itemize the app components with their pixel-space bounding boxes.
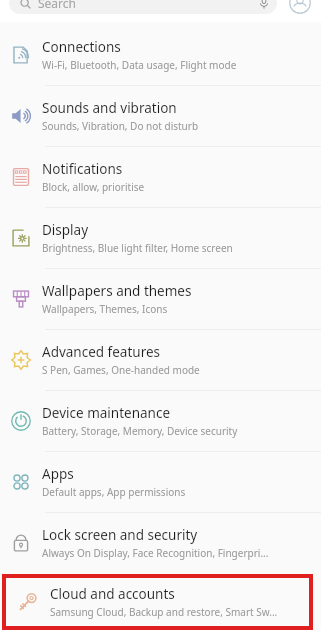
staticText: Sounds and vibration bbox=[42, 99, 177, 117]
staticText: Device maintenance bbox=[42, 404, 171, 422]
button[interactable]: Cloud and accounts bbox=[6, 578, 309, 626]
staticText: Sounds, Vibration, Do not disturb bbox=[42, 119, 199, 133]
staticText: Wi-Fi, Bluetooth, Data usage, Flight mod… bbox=[42, 58, 237, 72]
button[interactable]: Connections bbox=[0, 25, 321, 85]
button[interactable]: Advanced features bbox=[0, 330, 321, 390]
staticText: Block, allow, prioritise bbox=[42, 180, 145, 194]
staticText: Display bbox=[42, 221, 89, 239]
staticText: Battery, Storage, Memory, Device securit… bbox=[42, 424, 238, 438]
button[interactable]: Wallpapers and themes bbox=[0, 269, 321, 329]
staticText: Notifications bbox=[42, 160, 123, 178]
button[interactable]: Lock screen and security bbox=[0, 513, 321, 573]
staticText: Cloud and accounts bbox=[50, 585, 175, 603]
staticText: Wallpapers, Themes, Icons bbox=[42, 302, 168, 316]
staticText: Apps bbox=[42, 465, 74, 483]
staticText: Always On Display, Face Recognition, Fin… bbox=[42, 546, 269, 560]
button[interactable]: Notifications bbox=[0, 147, 321, 207]
button[interactable]: Voice search bbox=[257, 0, 271, 10]
button[interactable]: Search bbox=[9, 0, 277, 14]
staticText: Lock screen and security bbox=[42, 526, 198, 544]
staticText: Brightness, Blue light filter, Home scre… bbox=[42, 241, 233, 255]
staticText: Advanced features bbox=[42, 343, 161, 361]
staticText: Connections bbox=[42, 38, 121, 56]
staticText: Wallpapers and themes bbox=[42, 282, 192, 300]
staticText: Samsung Cloud, Backup and restore, Smart… bbox=[50, 605, 278, 619]
staticText: S Pen, Games, One-handed mode bbox=[42, 363, 200, 377]
button[interactable]: Apps bbox=[0, 452, 321, 512]
button[interactable]: Account bbox=[287, 0, 313, 14]
button[interactable]: Device maintenance bbox=[0, 391, 321, 451]
staticText: Default apps, App permissions bbox=[42, 485, 186, 499]
button[interactable]: Display bbox=[0, 208, 321, 268]
button[interactable]: Sounds and vibration bbox=[0, 86, 321, 146]
staticText: Search bbox=[38, 0, 76, 11]
